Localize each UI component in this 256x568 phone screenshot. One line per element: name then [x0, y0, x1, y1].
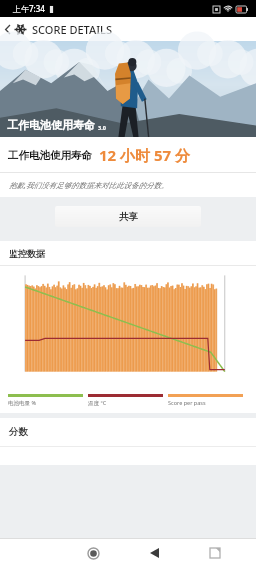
staticText: 上午7:34 [13, 3, 45, 14]
staticText: 工作电池使用寿命 [7, 118, 95, 132]
staticText: 抱歉,我们没有足够的数据来对比此设备的分数。 [9, 180, 169, 190]
staticText: Score per pass [168, 399, 206, 406]
staticText: 分数 [9, 426, 28, 438]
button[interactable]: Recent apps [200, 538, 230, 568]
staticText: 12 小时 57 分 [99, 145, 191, 165]
staticText: 监控数据 [9, 248, 45, 259]
staticText: 3.0 [98, 124, 106, 131]
staticText: 共享 [119, 211, 138, 223]
staticText: 电池电量 % [8, 399, 37, 407]
button[interactable]: 共享 [55, 206, 201, 227]
button[interactable]: Back [139, 538, 169, 568]
staticText: SCORE DETAILS [32, 22, 112, 37]
button[interactable]: Home [78, 538, 108, 568]
button[interactable]: Back [0, 17, 14, 41]
staticText: 温度 °C [88, 399, 107, 407]
staticText: 工作电池使用寿命 [8, 149, 92, 162]
